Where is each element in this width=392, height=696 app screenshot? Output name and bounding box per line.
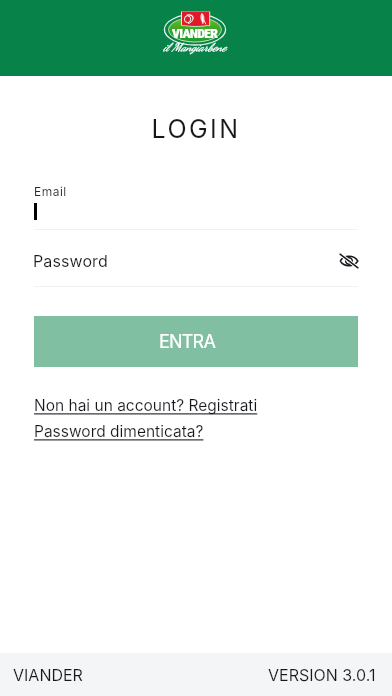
staticText: Email xyxy=(34,184,67,199)
staticText: Password xyxy=(33,251,108,270)
button[interactable]: Password dimenticata? xyxy=(34,422,204,441)
staticText: VIANDER xyxy=(172,25,218,41)
button[interactable]: Show password xyxy=(335,247,363,275)
button[interactable]: Non hai un account? Registrati xyxy=(34,396,258,415)
staticText: VIANDER xyxy=(13,665,83,684)
staticText: ENTRA xyxy=(159,331,216,353)
staticText: il Mangiarbene xyxy=(163,40,226,54)
staticText: VERSION 3.0.1 xyxy=(268,665,376,684)
staticText: LOGIN xyxy=(0,114,392,144)
button[interactable]: ENTRA xyxy=(34,316,358,367)
